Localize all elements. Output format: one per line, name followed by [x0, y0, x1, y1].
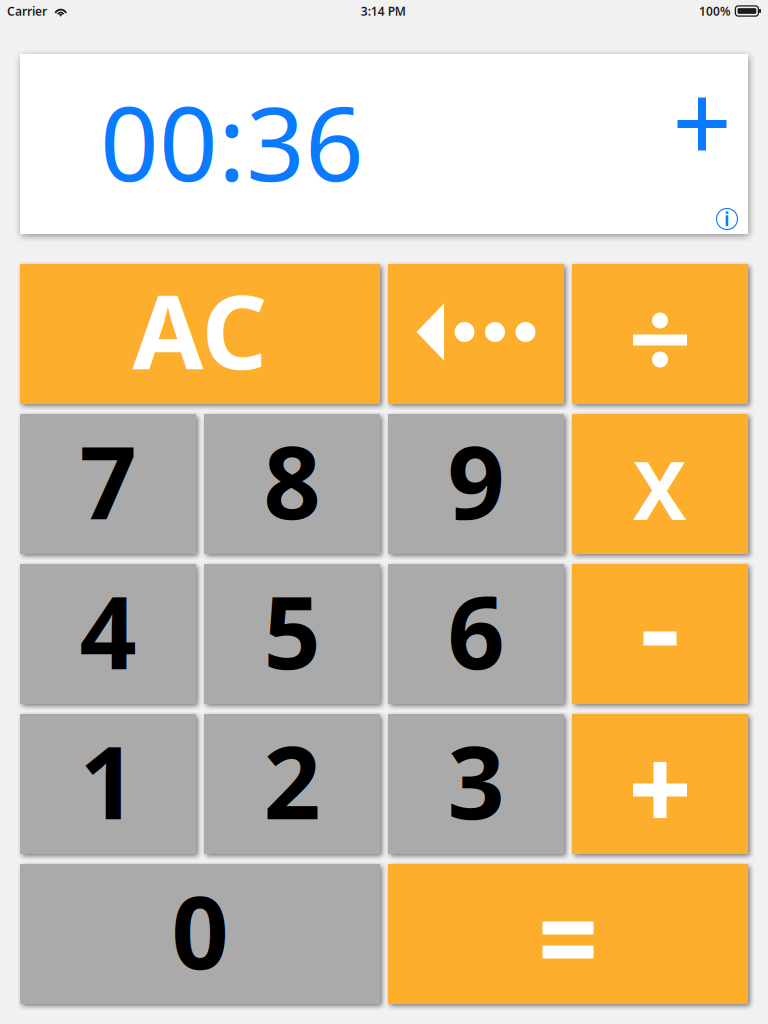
- button[interactable]: Divide: [572, 264, 748, 404]
- button[interactable]: 1: [20, 714, 196, 854]
- button[interactable]: All clear: [20, 264, 380, 404]
- button[interactable]: 9: [388, 414, 564, 554]
- button[interactable]: 7: [20, 414, 196, 554]
- staticText: i: [724, 205, 730, 232]
- staticText: Carrier: [7, 3, 47, 19]
- button[interactable]: 4: [20, 564, 196, 704]
- button[interactable]: Plus: [572, 714, 748, 854]
- button[interactable]: Minus: [572, 564, 748, 704]
- staticText: 9: [447, 414, 504, 547]
- button[interactable]: 5: [204, 564, 380, 704]
- button[interactable]: Backspace: [388, 264, 564, 404]
- button[interactable]: 3: [388, 714, 564, 854]
- staticText: 0: [171, 864, 228, 997]
- staticText: 100%: [699, 3, 731, 19]
- button[interactable]: Info: [711, 202, 743, 234]
- staticText: 2: [263, 714, 320, 847]
- button[interactable]: 0: [20, 864, 380, 1004]
- staticText: 00:36: [100, 73, 364, 210]
- staticText: 3:14 PM: [361, 3, 406, 19]
- button[interactable]: 6: [388, 564, 564, 704]
- button[interactable]: Equals: [388, 864, 748, 1004]
- button[interactable]: 8: [204, 414, 380, 554]
- staticText: 4: [79, 564, 136, 697]
- staticText: 1: [79, 714, 136, 847]
- button[interactable]: Multiply: [572, 414, 748, 554]
- staticText: X: [633, 436, 687, 542]
- button[interactable]: 2: [204, 714, 380, 854]
- staticText: 6: [447, 564, 504, 697]
- staticText: 3: [447, 714, 504, 847]
- staticText: 5: [263, 564, 320, 697]
- button[interactable]: Add: [663, 85, 741, 163]
- staticText: AC: [132, 261, 267, 398]
- staticText: 7: [79, 414, 136, 547]
- staticText: 8: [263, 414, 320, 547]
